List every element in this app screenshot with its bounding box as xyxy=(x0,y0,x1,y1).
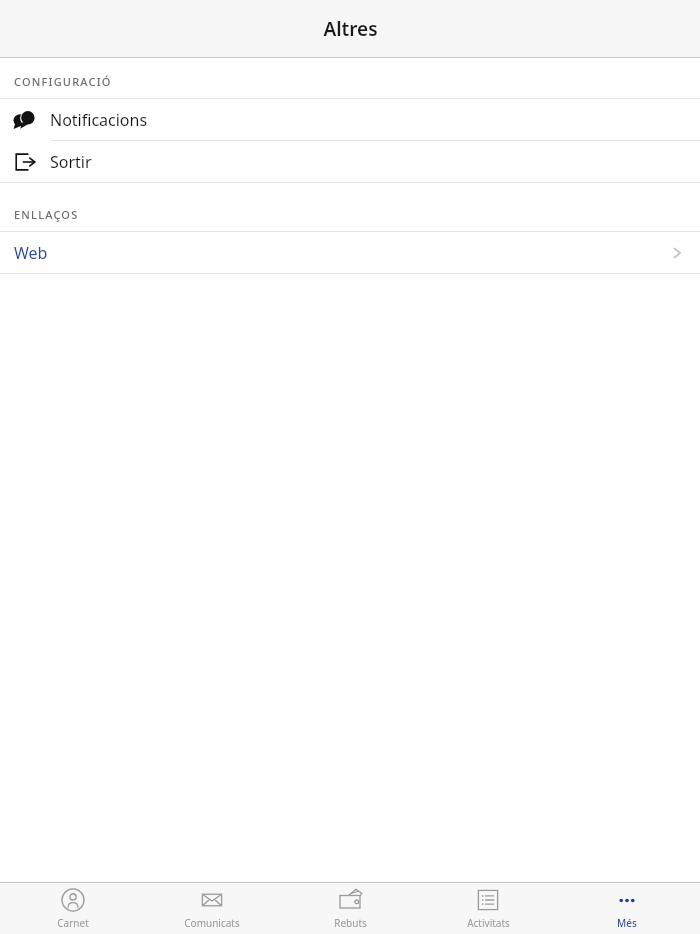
button[interactable]: Comunicats xyxy=(147,883,277,934)
staticText: Més xyxy=(617,916,637,930)
staticText: Rebuts xyxy=(334,916,367,930)
button[interactable]: Sortir xyxy=(0,141,700,182)
staticText: Sortir xyxy=(50,151,92,173)
staticText: Carnet xyxy=(57,916,89,930)
button[interactable]: Activitats xyxy=(423,883,553,934)
staticText: Altres xyxy=(323,16,378,42)
staticText: Activitats xyxy=(467,916,510,930)
staticText: ENLLAÇOS xyxy=(14,207,79,222)
button[interactable]: Web xyxy=(0,232,700,273)
staticText: Notificacions xyxy=(50,109,148,131)
button[interactable]: Carnet xyxy=(8,883,138,934)
staticText: Web xyxy=(14,242,48,264)
button[interactable]: Rebuts xyxy=(285,883,415,934)
staticText: CONFIGURACIÓ xyxy=(14,74,112,89)
staticText: Comunicats xyxy=(184,916,240,930)
button[interactable]: Més xyxy=(562,883,692,934)
button[interactable]: Notificacions xyxy=(0,99,700,140)
